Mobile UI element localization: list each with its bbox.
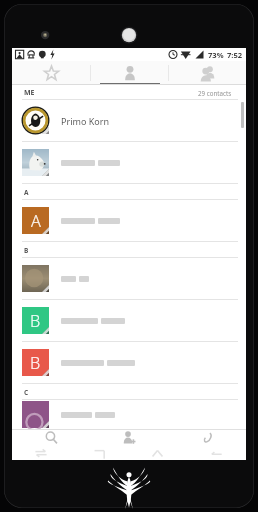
staticText: 29 contacts <box>198 89 232 97</box>
button[interactable]: Recent apps <box>12 446 70 460</box>
button[interactable]: Favorites <box>12 61 90 85</box>
button[interactable]: Contacts <box>91 61 168 85</box>
staticText: B <box>30 352 41 374</box>
button[interactable]: B <box>12 342 246 384</box>
staticText: B <box>30 310 41 332</box>
button[interactable]: Overview <box>70 446 128 460</box>
button[interactable]: Back <box>187 446 246 460</box>
button[interactable]: Groups <box>169 61 246 85</box>
button[interactable]: Primo Korn <box>12 100 246 142</box>
button[interactable]: More options <box>168 429 246 446</box>
button[interactable]: Home <box>128 446 187 460</box>
staticText: ME <box>24 88 35 98</box>
button[interactable] <box>12 142 246 184</box>
staticText: C <box>24 388 29 397</box>
staticText: 73% <box>208 50 224 60</box>
button[interactable] <box>12 258 246 300</box>
staticText: A <box>24 188 29 197</box>
staticText: A <box>31 210 41 232</box>
button[interactable]: A <box>12 200 246 242</box>
button[interactable] <box>12 400 246 429</box>
staticText: Primo Korn <box>61 115 109 127</box>
staticText: 7:52 <box>227 50 243 60</box>
button[interactable]: Search <box>12 429 90 446</box>
button[interactable]: B <box>12 300 246 342</box>
button[interactable]: Add contact <box>90 429 168 446</box>
staticText: B <box>24 246 29 255</box>
